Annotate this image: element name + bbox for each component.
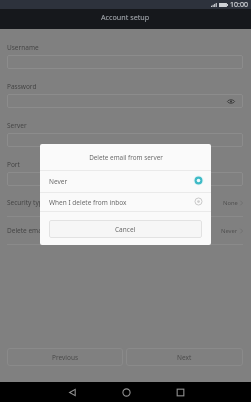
staticText: Delete email from server: [89, 153, 163, 162]
staticText: 10:00: [230, 0, 248, 9]
staticText: Password: [7, 82, 37, 91]
button[interactable]: Delete email from server: [7, 217, 243, 245]
staticText: When I delete from inbox: [49, 198, 193, 207]
staticText: Previous: [52, 353, 79, 362]
button[interactable]: Home: [116, 382, 136, 402]
staticText: Next: [177, 353, 192, 362]
staticText: Never: [49, 177, 193, 186]
staticText: Server: [7, 121, 27, 130]
staticText: Port: [7, 160, 20, 169]
staticText: Security type: [7, 198, 223, 207]
staticText: Username: [7, 43, 39, 52]
button[interactable]: Never: [49, 171, 204, 192]
button[interactable]: When I delete from inbox: [49, 193, 204, 211]
button[interactable]: Recents: [170, 382, 190, 402]
button[interactable]: Security type: [7, 189, 243, 217]
staticText: Account setup: [101, 12, 150, 22]
button[interactable]: Previous: [7, 348, 123, 366]
staticText: None: [223, 199, 238, 207]
staticText: Delete email from server: [7, 226, 221, 235]
staticText: Never: [221, 227, 238, 235]
button[interactable]: Cancel: [49, 220, 202, 238]
button[interactable]: Back: [62, 382, 82, 402]
staticText: Cancel: [115, 225, 136, 234]
button[interactable]: Next: [126, 348, 243, 366]
